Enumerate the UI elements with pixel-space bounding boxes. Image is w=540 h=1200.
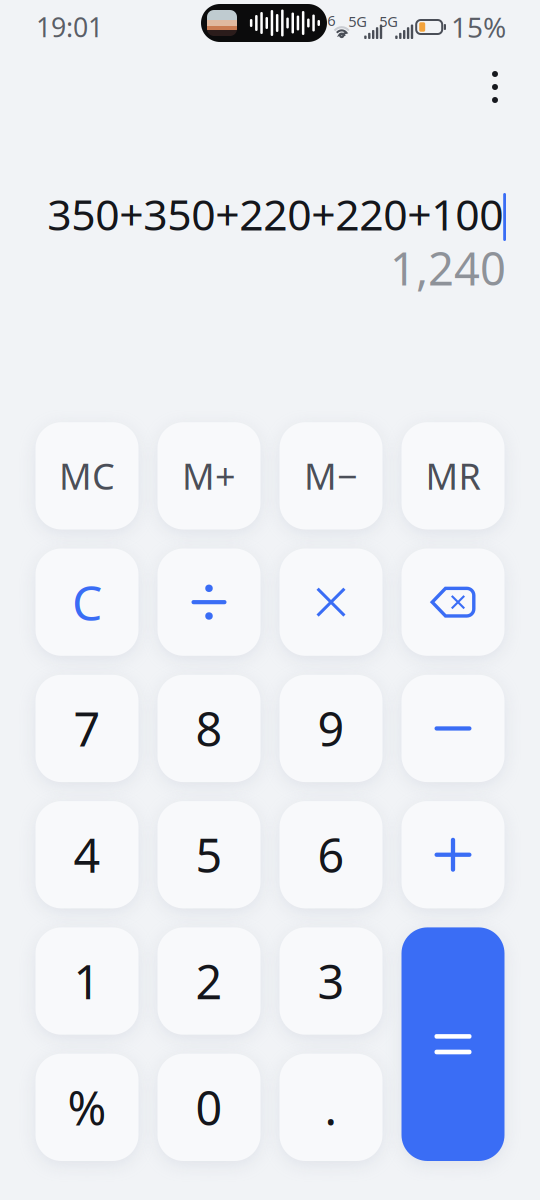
- button[interactable]: 3: [279, 927, 382, 1035]
- button[interactable]: More options: [471, 54, 519, 118]
- staticText: 1,240: [390, 238, 506, 298]
- staticText: M−: [304, 452, 358, 500]
- button[interactable]: 0: [157, 1054, 260, 1161]
- button[interactable]: 2: [157, 927, 260, 1035]
- staticText: 5G: [379, 11, 398, 31]
- button[interactable]: 8: [157, 675, 260, 782]
- button[interactable]: C: [35, 548, 138, 656]
- button[interactable]: 5: [157, 801, 260, 908]
- staticText: MR: [425, 452, 480, 500]
- button[interactable]: 6: [279, 801, 382, 908]
- staticText: M+: [182, 452, 236, 500]
- staticText: 5G: [348, 11, 367, 31]
- staticText: .: [324, 1076, 337, 1138]
- staticText: 0: [195, 1076, 222, 1138]
- button[interactable]: 4: [35, 801, 138, 908]
- button[interactable]: MR: [401, 422, 504, 529]
- staticText: 7: [73, 697, 100, 759]
- staticText: 5: [195, 824, 222, 886]
- staticText: 19:01: [36, 9, 103, 45]
- button[interactable]: MC: [35, 422, 138, 529]
- button[interactable]: Minus: [401, 675, 504, 782]
- staticText: 15%: [451, 8, 506, 46]
- staticText: 4: [73, 824, 100, 886]
- button[interactable]: %: [35, 1054, 138, 1161]
- button[interactable]: 1: [35, 927, 138, 1035]
- staticText: 1: [73, 950, 100, 1012]
- staticText: 6: [327, 10, 335, 30]
- staticText: 2: [195, 950, 222, 1012]
- button[interactable]: .: [279, 1054, 382, 1161]
- button[interactable]: M+: [157, 422, 260, 529]
- button[interactable]: Backspace: [401, 548, 504, 656]
- staticText: 9: [317, 697, 344, 759]
- staticText: 8: [195, 697, 222, 759]
- button[interactable]: 7: [35, 675, 138, 782]
- staticText: 6: [317, 824, 344, 886]
- staticText: MC: [59, 452, 115, 500]
- button[interactable]: Divide: [157, 548, 260, 656]
- button[interactable]: Plus: [401, 801, 504, 908]
- button[interactable]: Equals: [401, 927, 504, 1161]
- button[interactable]: M−: [279, 422, 382, 529]
- staticText: 350+350+220+220+100: [47, 186, 503, 242]
- button[interactable]: 9: [279, 675, 382, 782]
- staticText: 3: [317, 950, 344, 1012]
- button[interactable]: Multiply: [279, 548, 382, 656]
- staticText: %: [67, 1076, 106, 1138]
- staticText: C: [72, 570, 102, 634]
